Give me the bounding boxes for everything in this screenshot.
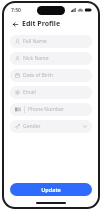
button[interactable]: Gender — [10, 120, 92, 133]
button[interactable]: Back — [10, 19, 20, 29]
staticText: Date of Birth — [23, 72, 53, 79]
staticText: Edit Profile — [22, 19, 61, 29]
button[interactable]: Phone Number — [10, 103, 92, 116]
button[interactable]: Date of Birth — [10, 69, 92, 82]
staticText: Email — [23, 89, 36, 96]
staticText: 7:50 — [11, 7, 21, 14]
staticText: Phone Number — [28, 106, 64, 113]
staticText: Nick Name — [23, 55, 49, 62]
button[interactable]: Nick Name — [10, 52, 92, 65]
button[interactable]: Update — [10, 183, 92, 196]
staticText: Update — [41, 186, 61, 193]
button[interactable]: Full Name — [10, 35, 92, 48]
button[interactable]: Email — [10, 86, 92, 99]
staticText: Gender — [23, 123, 41, 130]
staticText: Full Name — [23, 38, 47, 45]
